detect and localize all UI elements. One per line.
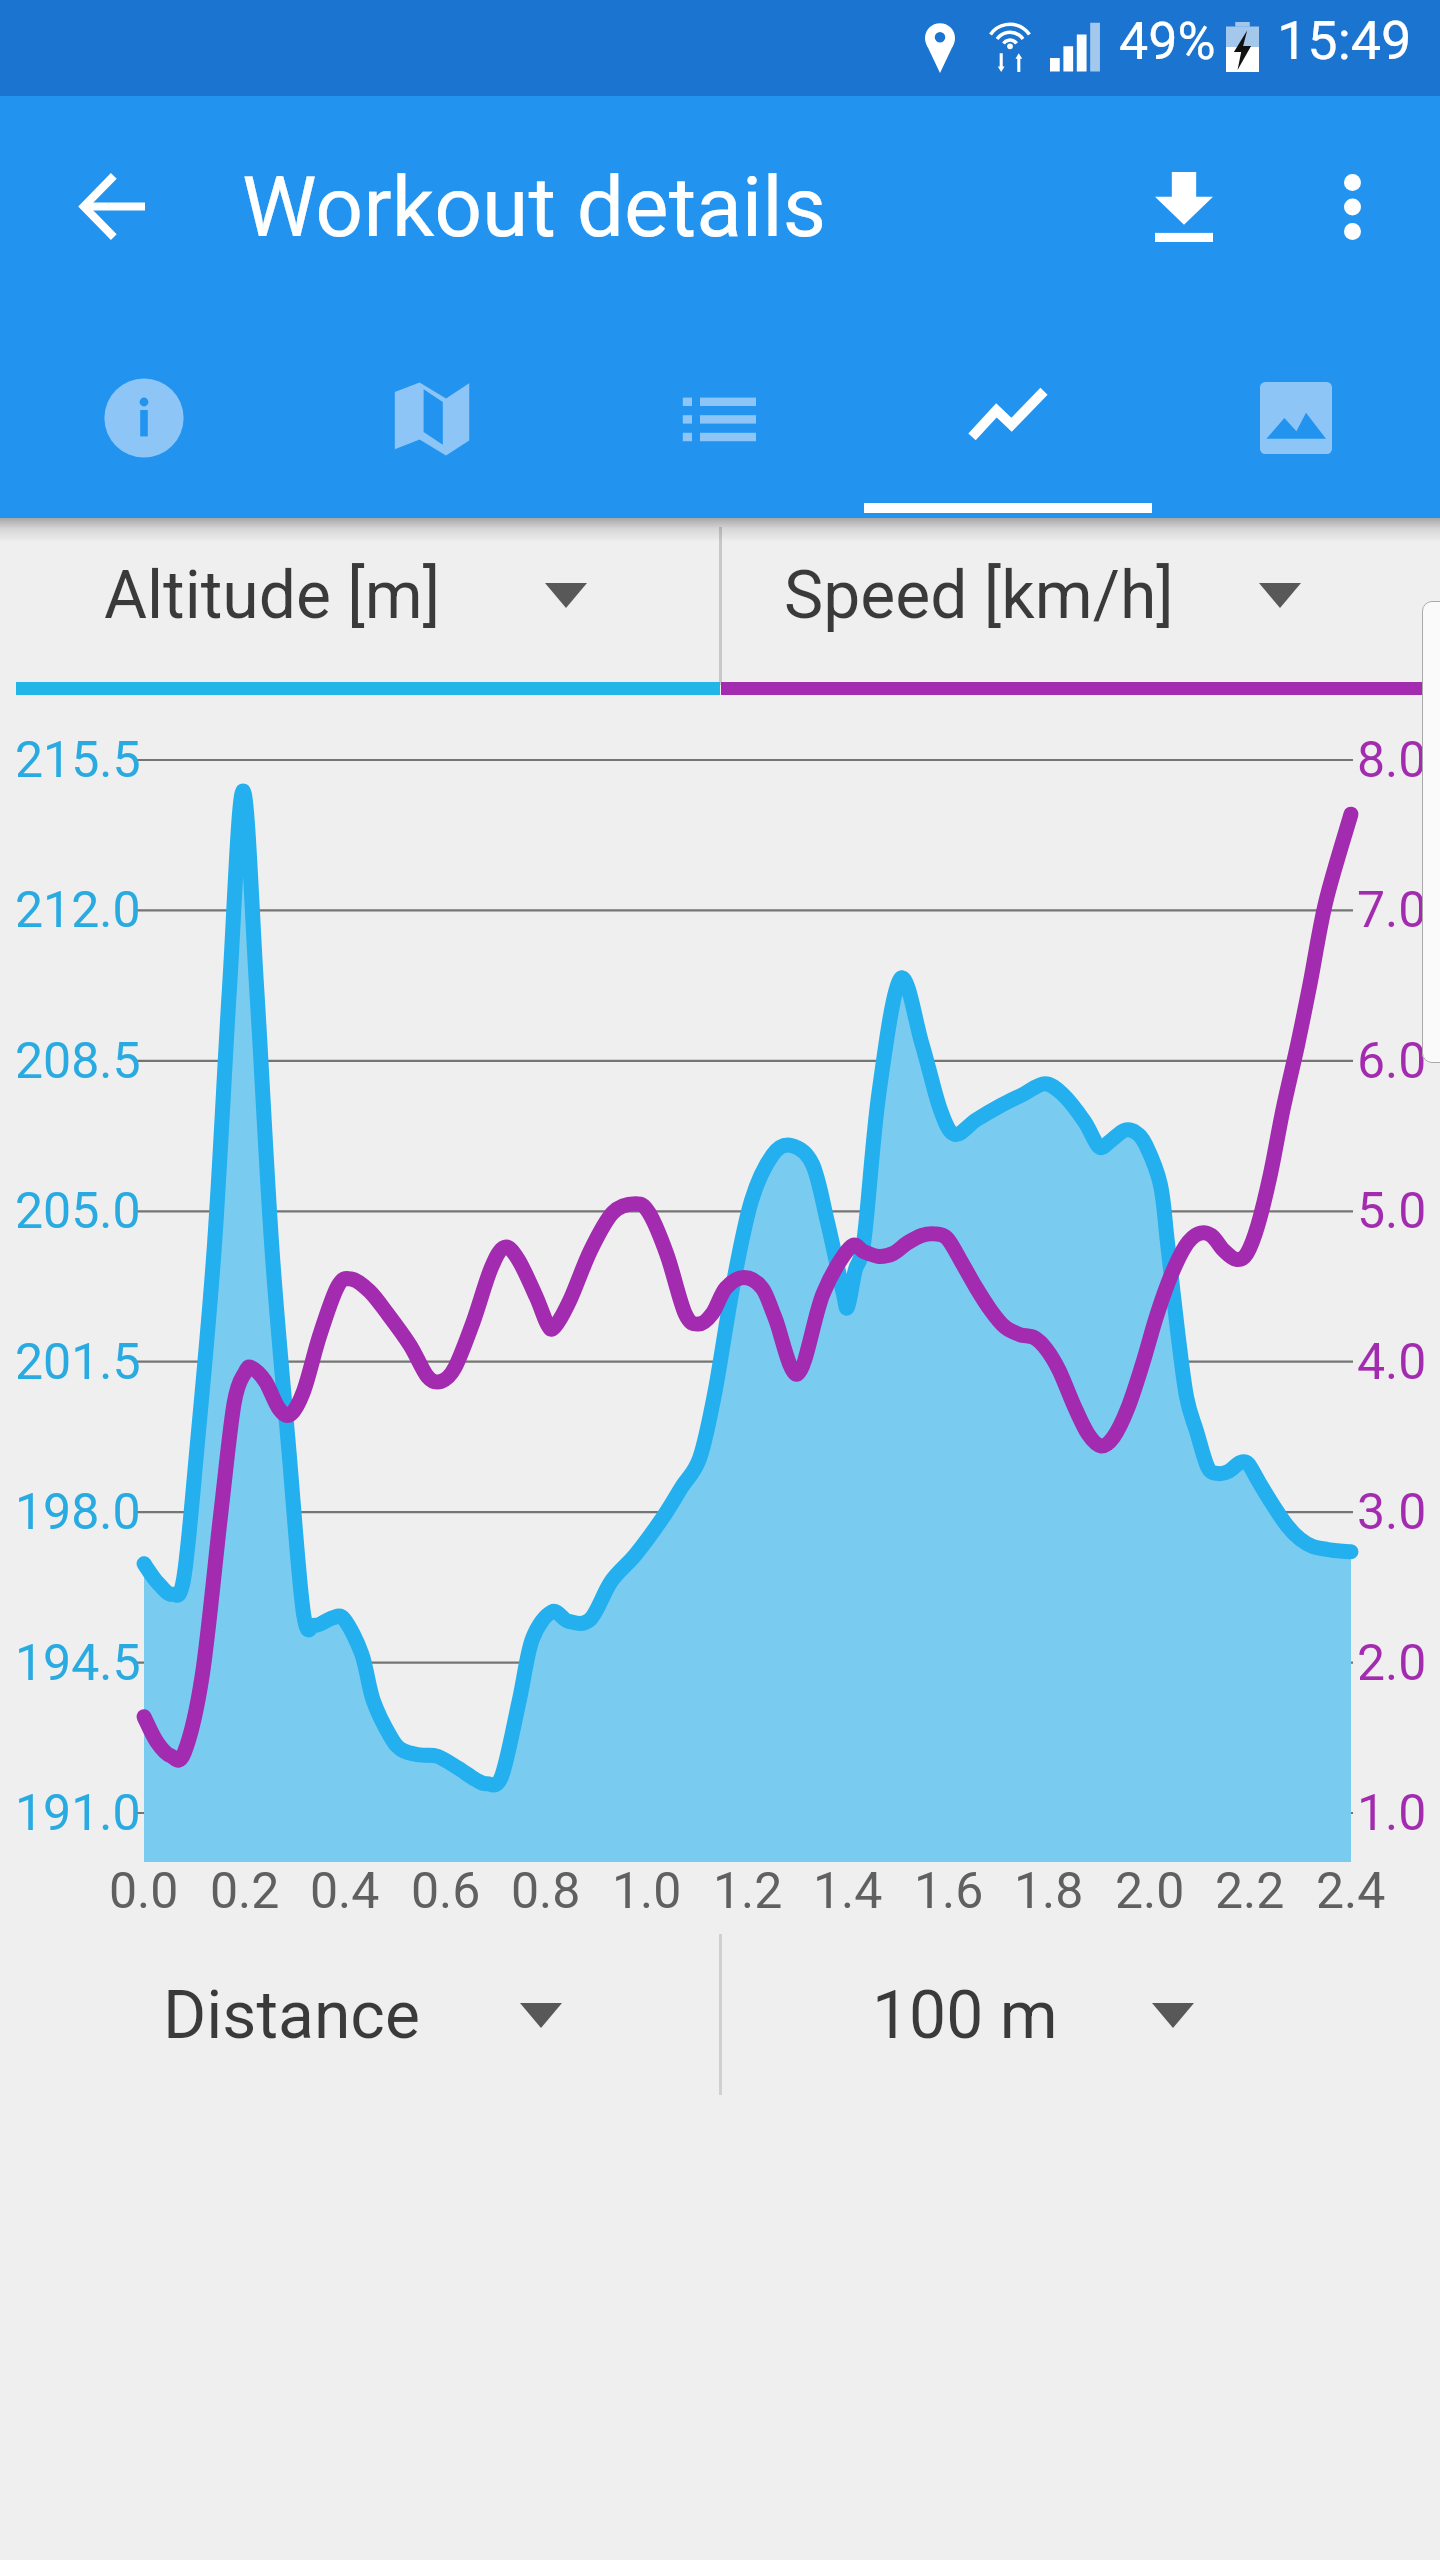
staticText: 1.0 <box>612 1862 682 1921</box>
staticText: 1.8 <box>1014 1862 1084 1921</box>
staticText: 100 m <box>872 1977 1058 2054</box>
staticText: 0.2 <box>210 1862 280 1921</box>
staticText: 208.5 <box>15 1032 141 1091</box>
staticText: 7.0 <box>1357 881 1427 940</box>
staticText: 1.0 <box>1357 1784 1427 1843</box>
button[interactable]: Charts <box>864 336 1152 518</box>
button[interactable]: Photos <box>1152 336 1440 518</box>
staticText: 2.4 <box>1316 1862 1386 1921</box>
staticText: 0.0 <box>109 1862 179 1921</box>
staticText: 191.0 <box>15 1784 141 1843</box>
staticText: 3.0 <box>1357 1483 1427 1542</box>
staticText: 201.5 <box>15 1333 141 1392</box>
button[interactable]: Map <box>288 336 576 518</box>
staticText: 205.0 <box>15 1182 141 1241</box>
staticText: 2.0 <box>1357 1634 1427 1693</box>
staticText: 4.0 <box>1357 1333 1427 1392</box>
button[interactable]: Altitude [m] <box>0 512 720 678</box>
staticText: Speed [km/h] <box>784 557 1174 634</box>
button[interactable]: Back <box>52 146 172 266</box>
staticText: 1.2 <box>713 1862 783 1921</box>
staticText: 6.0 <box>1357 1032 1427 1091</box>
staticText: 198.0 <box>15 1483 141 1542</box>
button[interactable]: 100 m <box>720 1932 1440 2098</box>
staticText: 1.4 <box>813 1862 883 1921</box>
staticText: Altitude [m] <box>104 557 441 634</box>
staticText: 2.0 <box>1115 1862 1185 1921</box>
staticText: 2.2 <box>1215 1862 1285 1921</box>
staticText: 15:49 <box>1277 9 1412 72</box>
staticText: 194.5 <box>15 1634 141 1693</box>
staticText: 8.0 <box>1357 731 1427 790</box>
button[interactable]: Laps <box>576 336 864 518</box>
staticText: 0.4 <box>310 1862 380 1921</box>
staticText: 0.6 <box>411 1862 481 1921</box>
staticText: 215.5 <box>15 731 141 790</box>
button[interactable]: Distance <box>0 1932 720 2098</box>
staticText: Workout details <box>242 158 827 256</box>
staticText: Distance <box>163 1977 420 2054</box>
staticText: 212.0 <box>15 881 141 940</box>
button[interactable]: Speed [km/h] <box>720 512 1440 678</box>
staticText: 49% <box>1119 11 1216 72</box>
staticText: 0.8 <box>511 1862 581 1921</box>
button[interactable]: Download <box>1124 147 1244 267</box>
button[interactable]: More options <box>1292 147 1412 267</box>
staticText: 1.6 <box>914 1862 984 1921</box>
staticText: 5.0 <box>1357 1182 1427 1241</box>
button[interactable]: Info <box>0 336 288 518</box>
